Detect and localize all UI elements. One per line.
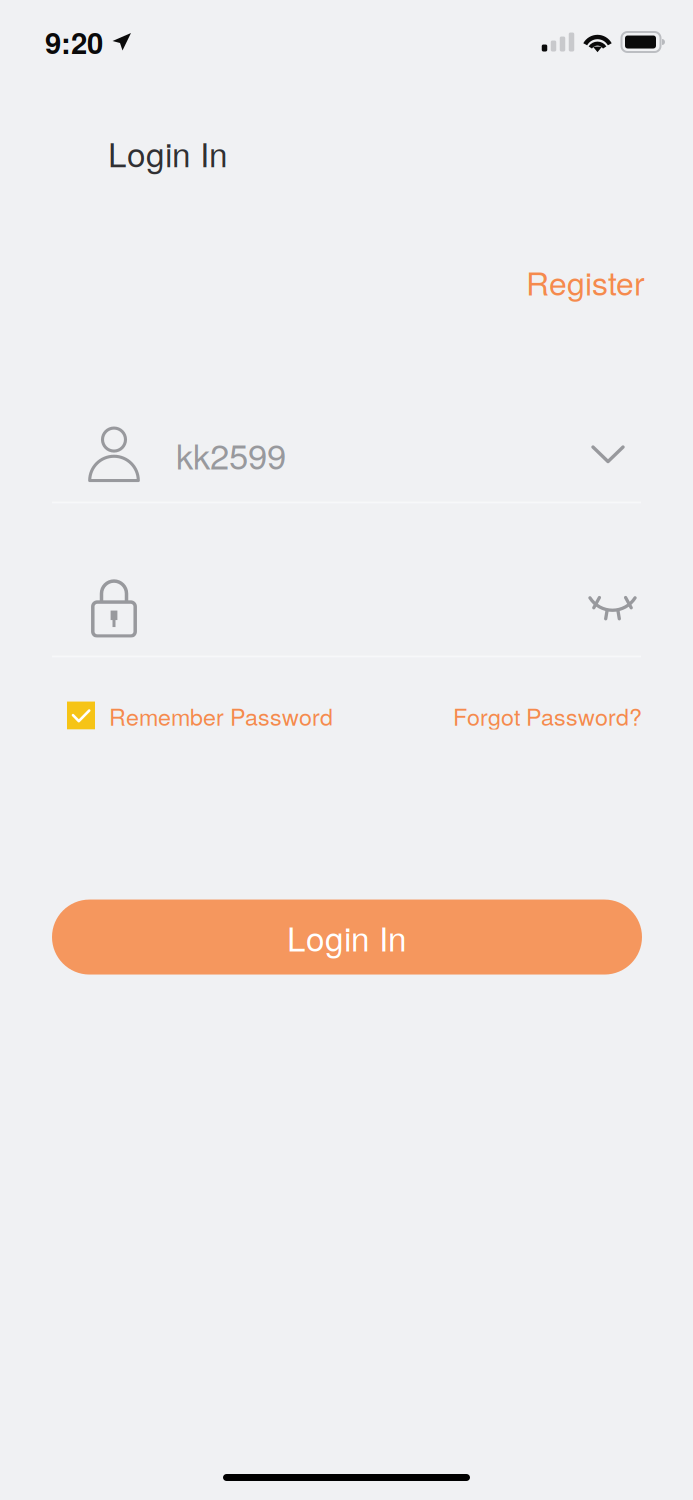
staticText: Register bbox=[526, 259, 645, 304]
staticText: Forgot Password? bbox=[453, 699, 642, 732]
button[interactable]: Choose account bbox=[569, 426, 693, 483]
staticText: Login In bbox=[108, 129, 228, 177]
staticText: Login In bbox=[287, 913, 407, 961]
button[interactable]: Login In bbox=[52, 900, 642, 975]
button[interactable]: Forgot Password? bbox=[453, 699, 693, 732]
button[interactable]: Show password bbox=[568, 581, 693, 637]
button[interactable]: Remember Password bbox=[0, 699, 333, 732]
staticText: Remember Password bbox=[109, 699, 333, 732]
staticText: 9:20 bbox=[45, 21, 103, 63]
button[interactable]: Register bbox=[0, 247, 693, 316]
staticText: kk2599 bbox=[176, 430, 286, 479]
